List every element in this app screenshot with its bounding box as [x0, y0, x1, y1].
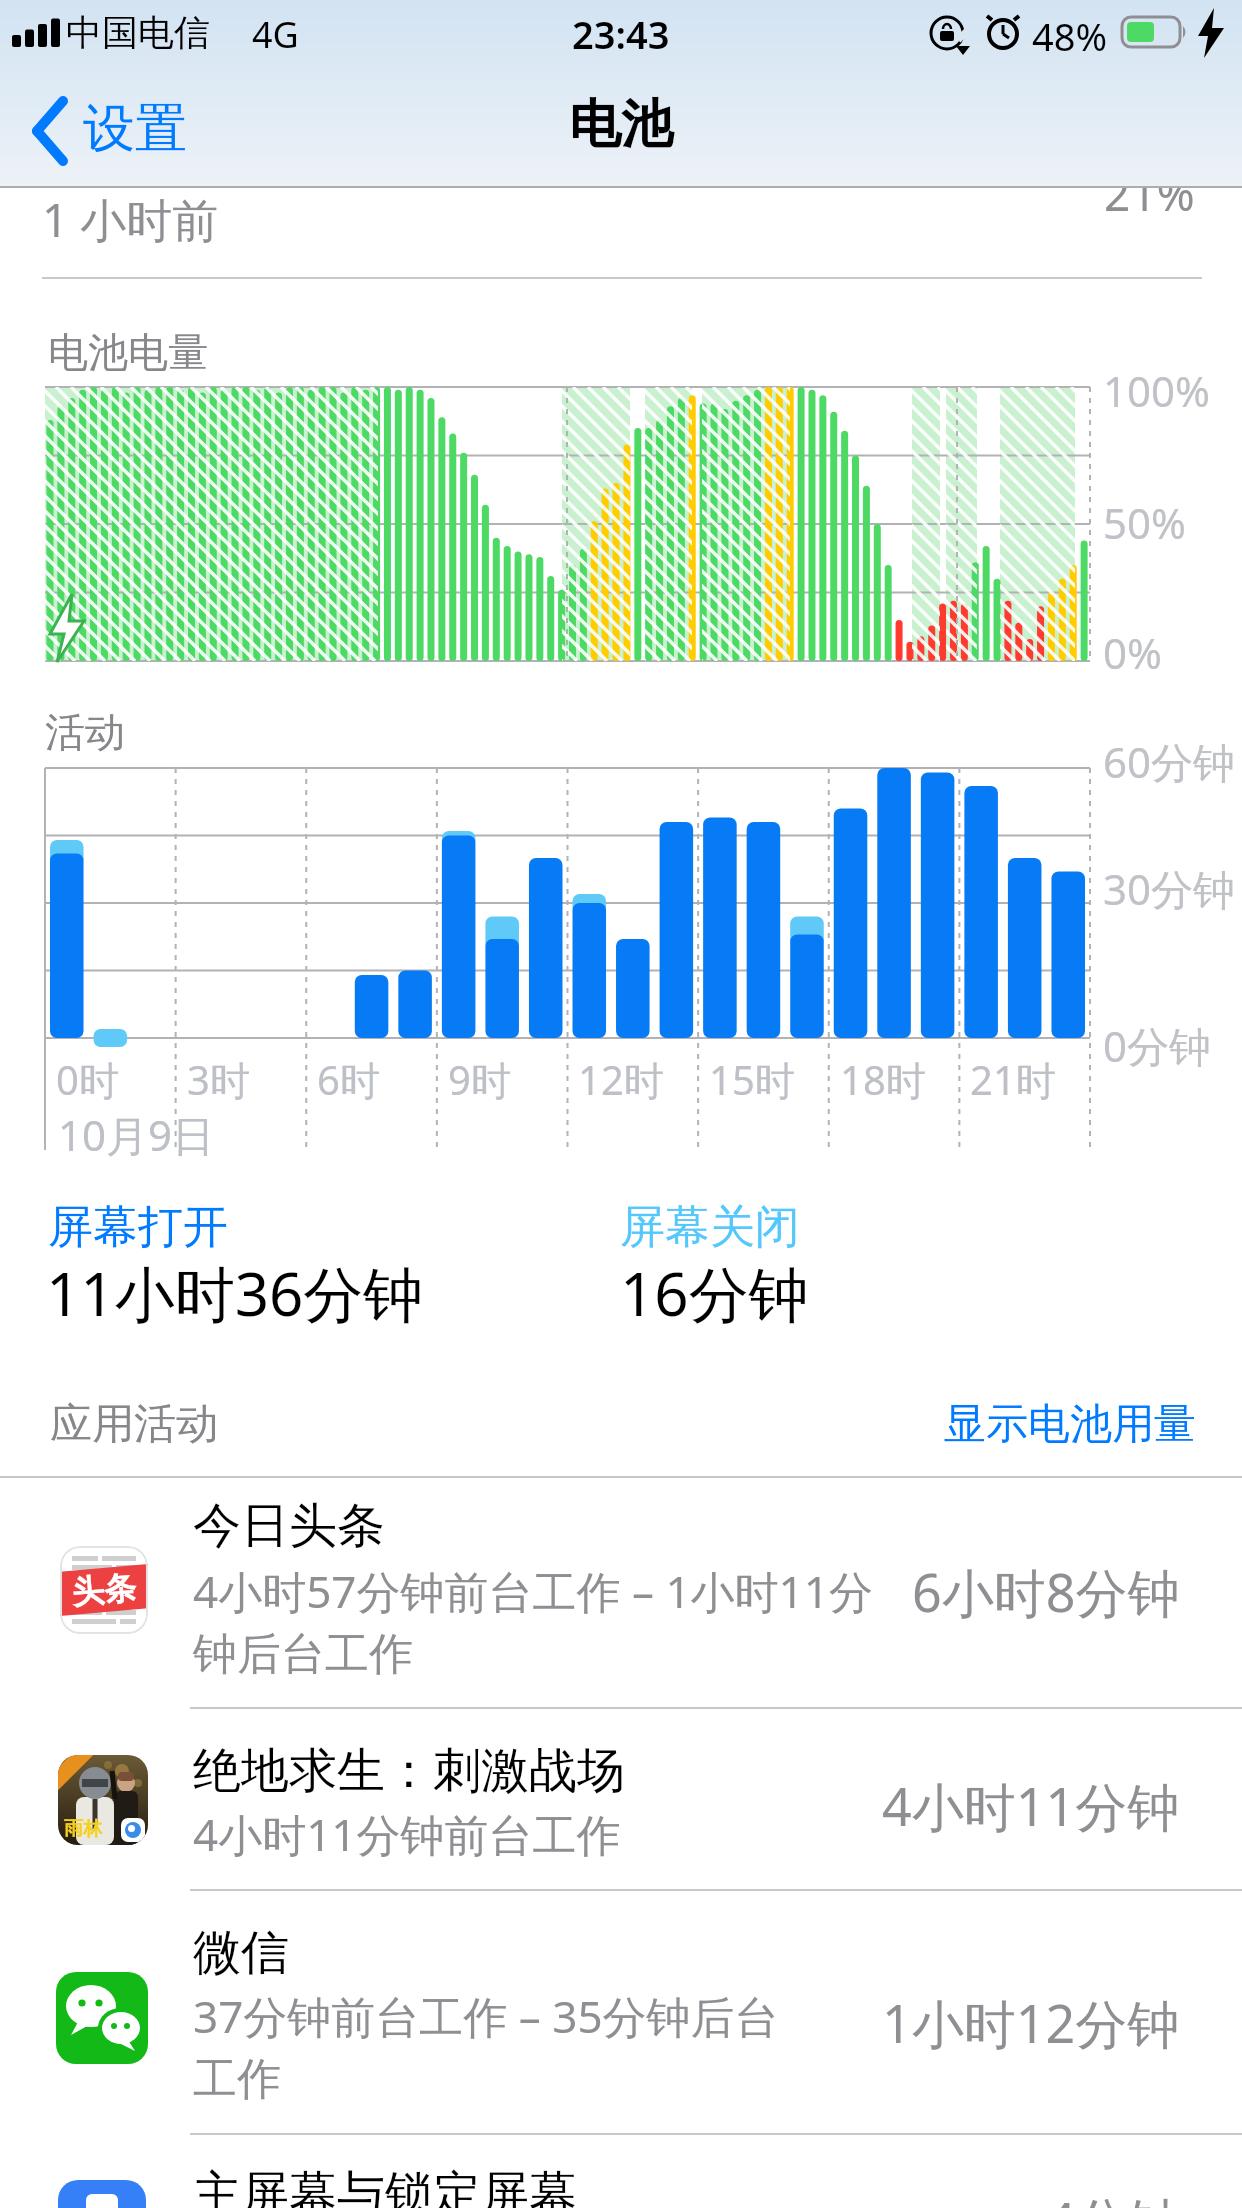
button[interactable] — [0, 1480, 1242, 1708]
staticText: 应用活动 — [50, 1398, 218, 1451]
staticText: 21时 — [970, 1052, 1056, 1107]
staticText: 37分钟前台工作 – 35分钟后台 — [193, 1986, 779, 2046]
staticText: 今日头条 — [193, 1496, 385, 1556]
staticText: 4G — [252, 10, 299, 59]
button[interactable] — [56, 1972, 148, 2064]
staticText: 1小时12分钟 — [882, 1987, 1180, 2058]
button[interactable] — [0, 2134, 1242, 2208]
staticText: 0% — [1103, 624, 1162, 681]
staticText: 电池 — [569, 92, 673, 158]
button[interactable] — [0, 1890, 1242, 2134]
staticText: 主屏幕与锁定屏幕 — [193, 2164, 577, 2208]
staticText: 电池电量 — [48, 327, 208, 377]
staticText: 微信 — [193, 1923, 289, 1983]
staticText: 1 小时前 — [42, 188, 219, 251]
staticText: 0时 — [56, 1052, 119, 1107]
staticText: 0分钟 — [1103, 1017, 1212, 1074]
staticText: 9时 — [448, 1052, 511, 1107]
staticText: 4小时57分钟前台工作 – 1小时11分 — [193, 1561, 873, 1621]
button[interactable]: 头条 — [60, 1546, 148, 1634]
staticText: 48% — [1032, 10, 1108, 62]
staticText: 50% — [1103, 494, 1186, 551]
staticText: 屏幕打开 — [48, 1199, 228, 1256]
staticText: 屏幕关闭 — [620, 1199, 800, 1256]
button[interactable] — [0, 1708, 1242, 1890]
staticText: 雨林 — [64, 1817, 102, 1841]
staticText: 11小时36分钟 — [46, 1252, 424, 1334]
staticText: 6时 — [317, 1052, 380, 1107]
button[interactable]: 雨林 — [58, 1755, 148, 1845]
staticText: 10月9日 — [58, 1106, 215, 1163]
staticText: 100% — [1103, 362, 1210, 419]
staticText: 12时 — [578, 1052, 664, 1107]
staticText: 设置 — [83, 96, 187, 162]
staticText: 30分钟 — [1103, 860, 1236, 917]
button[interactable] — [58, 2180, 146, 2208]
button[interactable]: 设置 — [30, 92, 134, 158]
button[interactable]: 显示电池用量 — [944, 1398, 1196, 1451]
staticText: 6小时8分钟 — [912, 1556, 1180, 1627]
staticText: 中国电信 — [66, 10, 210, 55]
staticText: 3时 — [187, 1052, 250, 1107]
staticText: 工作 — [193, 2052, 281, 2107]
staticText: 18时 — [840, 1052, 926, 1107]
staticText: 4小时11分钟前台工作 — [193, 1804, 621, 1864]
staticText: 钟后台工作 — [193, 1627, 413, 1682]
staticText: 绝地求生：刺激战场 — [193, 1741, 625, 1801]
staticText: 23:43 — [572, 8, 670, 60]
staticText: 头条 — [70, 1567, 138, 1613]
staticText: 15时 — [709, 1052, 795, 1107]
staticText: 16分钟 — [620, 1252, 809, 1334]
staticText: 21% — [1104, 162, 1195, 225]
staticText: 60分钟 — [1103, 733, 1236, 790]
staticText: 4分钟 — [1046, 2185, 1180, 2208]
staticText: 活动 — [45, 707, 125, 757]
staticText: 4小时11分钟 — [882, 1770, 1180, 1841]
